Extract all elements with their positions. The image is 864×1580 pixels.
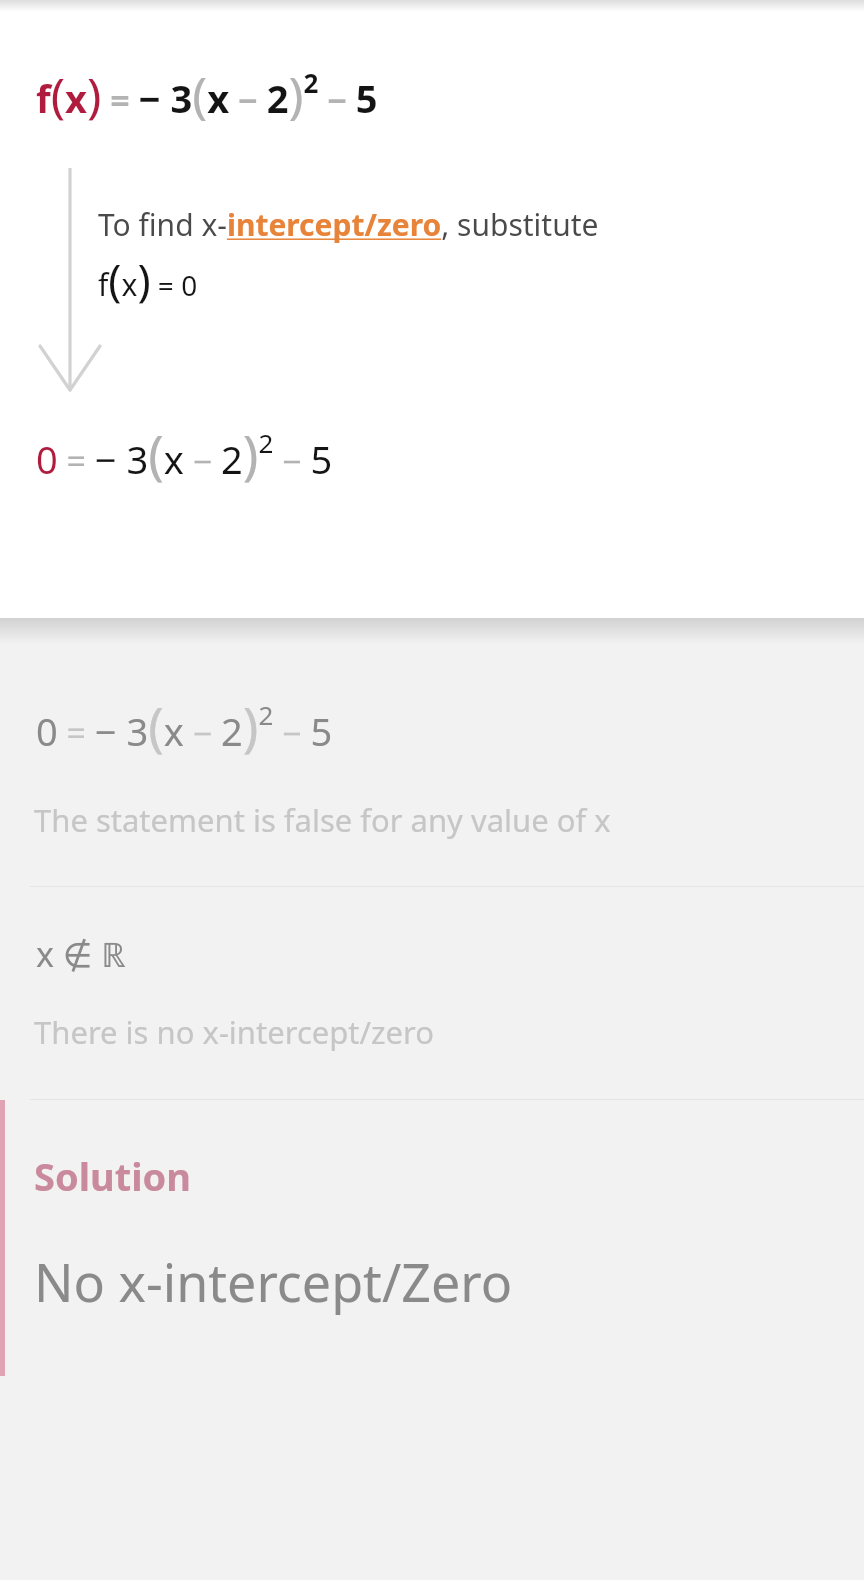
staticText: 0 = − 3(x − 2)2 − 5 [36, 418, 333, 489]
staticText: No x-intercept/Zero [34, 1246, 513, 1317]
staticText: f(x) = − 3(x − 2)2 − 5 [36, 60, 378, 128]
staticText: Solution [34, 1150, 192, 1202]
staticText: The statement is false for any value of … [34, 799, 611, 841]
staticText: f(x) = 0 [98, 249, 198, 309]
staticText: There is no x-intercept/zero [34, 1011, 435, 1053]
staticText: x ∉ ℝ [36, 931, 126, 977]
button[interactable]: To find x-intercept/zero, substitute [98, 204, 599, 245]
staticText: 0 = − 3(x − 2)2 − 5 [36, 690, 333, 761]
other: Step arrow [48, 168, 92, 390]
